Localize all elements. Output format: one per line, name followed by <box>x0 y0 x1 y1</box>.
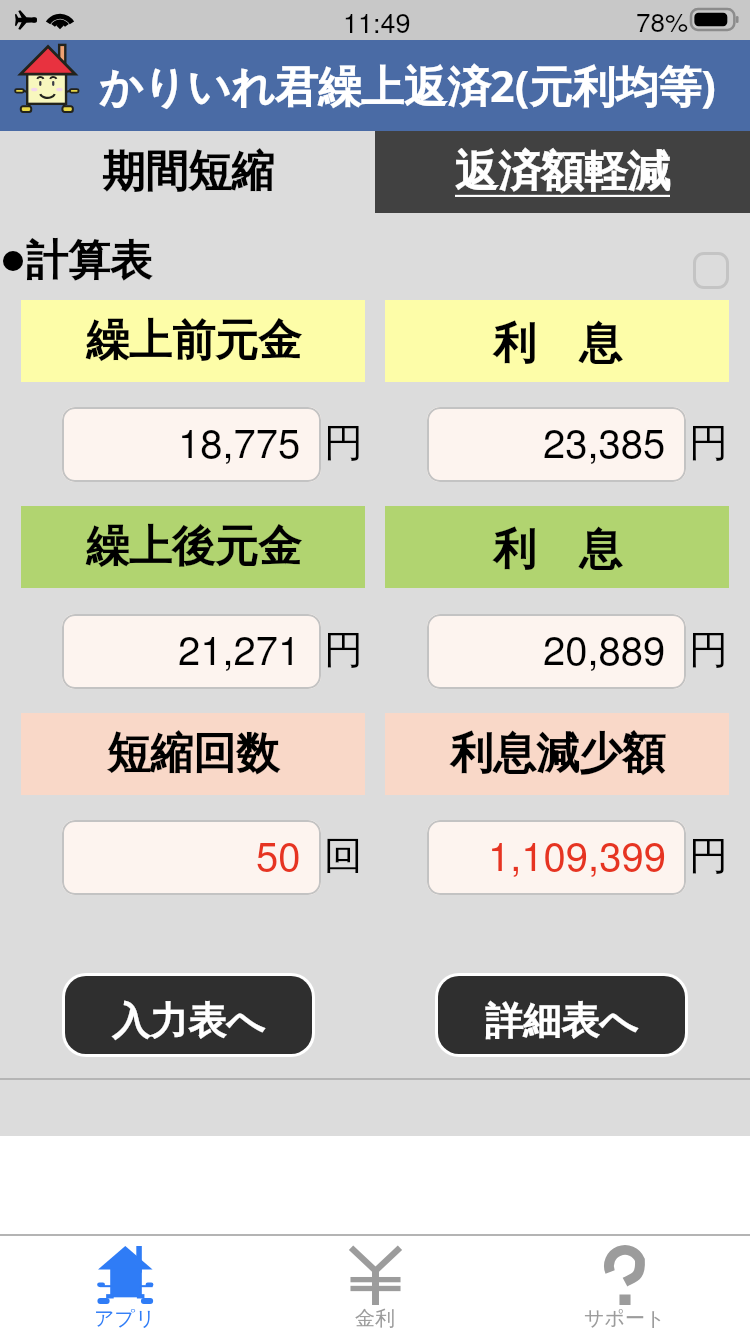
staticText: 回 <box>324 831 363 880</box>
staticText: 円 <box>689 831 728 880</box>
staticText: 78% <box>636 2 689 39</box>
button[interactable]: 入力表へ <box>65 976 312 1054</box>
staticText: 繰上前元金 <box>86 314 301 368</box>
staticText: サポート <box>584 1306 666 1331</box>
staticText: 計算表 <box>26 235 152 288</box>
staticText: 21,271 <box>178 619 301 676</box>
staticText: 円 <box>689 625 728 674</box>
staticText: アプリ <box>94 1306 156 1331</box>
staticText: 23,385 <box>543 412 666 469</box>
staticText: 期間短縮 <box>102 145 274 199</box>
button[interactable]: 返済額軽減 <box>375 131 750 213</box>
staticText: 1,109,399 <box>488 825 666 882</box>
staticText: 円 <box>324 625 363 674</box>
staticText: 利 息 <box>493 518 622 577</box>
staticText: 11:49 <box>343 2 411 41</box>
staticText: 繰上後元金 <box>86 520 301 574</box>
staticText: 20,889 <box>543 619 666 676</box>
staticText: 返済額軽減 <box>455 145 670 199</box>
button[interactable]: アプリ <box>0 1236 250 1334</box>
staticText: かりいれ君繰上返済2(元利均等) <box>99 56 716 115</box>
button[interactable]: 金利 <box>250 1236 500 1334</box>
staticText: 金利 <box>355 1306 395 1331</box>
button[interactable]: Options <box>693 252 729 289</box>
staticText: 利 息 <box>493 312 622 371</box>
staticText: 利息減少額 <box>450 727 665 781</box>
staticText: 入力表へ <box>112 997 265 1045</box>
staticText: 短縮回数 <box>107 727 279 781</box>
staticText: 18,775 <box>178 412 301 469</box>
staticText: 詳細表へ <box>485 997 638 1045</box>
staticText: 円 <box>689 418 728 467</box>
button[interactable]: 詳細表へ <box>438 976 685 1054</box>
staticText: 円 <box>324 418 363 467</box>
button[interactable]: 期間短縮 <box>0 131 375 213</box>
staticText: 50 <box>256 825 301 882</box>
button[interactable]: サポート <box>500 1236 750 1334</box>
